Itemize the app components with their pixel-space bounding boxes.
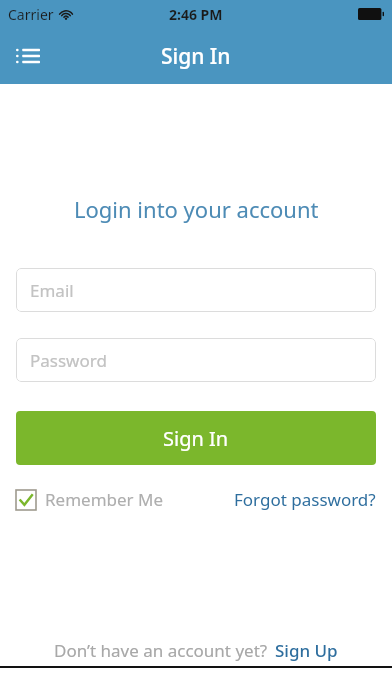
button[interactable]: Forgot password? (234, 484, 376, 515)
button[interactable]: Password (16, 338, 376, 382)
button[interactable]: Menu (0, 28, 56, 84)
button[interactable]: Remember Me (16, 484, 164, 515)
staticText: Sign Up (275, 639, 338, 662)
staticText: Sign In (161, 42, 231, 71)
staticText: Login into your account (74, 194, 319, 224)
staticText: Remember Me (45, 488, 164, 511)
staticText: Password (30, 349, 107, 372)
staticText: Forgot password? (234, 488, 376, 511)
staticText: Carrier (8, 5, 54, 24)
staticText: Don’t have an account yet? (54, 639, 268, 662)
staticText: Email (30, 279, 74, 302)
staticText: 2:46 PM (169, 5, 223, 24)
button[interactable]: Sign Up (275, 635, 338, 666)
button[interactable]: Sign In (16, 411, 376, 465)
staticText: Sign In (163, 425, 229, 452)
button[interactable]: Email (16, 268, 376, 312)
